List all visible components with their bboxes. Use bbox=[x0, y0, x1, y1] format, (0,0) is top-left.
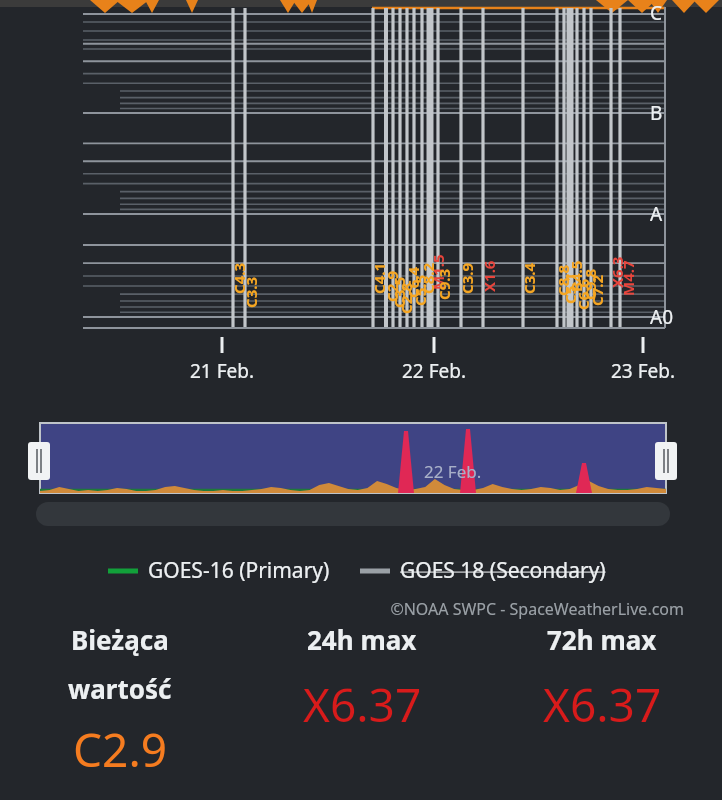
staticText: C4.3 bbox=[229, 262, 249, 294]
staticText: C6.4 bbox=[403, 266, 423, 298]
staticText: B4.5 bbox=[566, 260, 586, 292]
staticText: Bieżąca bbox=[71, 622, 169, 657]
staticText: C6.6 bbox=[573, 278, 593, 310]
staticText: C2.9 bbox=[382, 270, 402, 302]
staticText: B bbox=[650, 100, 663, 126]
staticText: A bbox=[650, 201, 663, 227]
staticText: wartość bbox=[68, 671, 172, 706]
staticText: C3.9 bbox=[457, 262, 477, 294]
staticText: C3.4 bbox=[519, 262, 539, 294]
button[interactable]: GOES X-ray flux chart bbox=[0, 0, 722, 400]
staticText: X1.6 bbox=[479, 260, 499, 292]
staticText: X6.3 bbox=[607, 256, 627, 288]
button[interactable]: Chart range selector bbox=[28, 420, 698, 500]
staticText: 22 Feb. bbox=[424, 460, 482, 483]
staticText: 72h max bbox=[547, 622, 657, 657]
staticText: C7.2 bbox=[587, 274, 607, 306]
button[interactable]: GOES 18 (Secondary) bbox=[360, 556, 606, 585]
staticText: C2.8 bbox=[396, 282, 416, 314]
staticText: M1.5 bbox=[428, 254, 448, 290]
staticText: C2.9 bbox=[73, 718, 168, 781]
staticText: C bbox=[650, 0, 663, 26]
staticText: C8.8 bbox=[553, 264, 573, 296]
staticText: 24h max bbox=[307, 622, 417, 657]
staticText: C5.1 bbox=[560, 272, 580, 304]
staticText: 21 Feb. bbox=[170, 358, 274, 384]
button[interactable]: GOES-16 (Primary) bbox=[108, 556, 330, 585]
staticText: GOES 18 (Secondary) bbox=[400, 556, 606, 585]
staticText: C8.2 bbox=[418, 262, 438, 294]
staticText: C4.1 bbox=[369, 262, 389, 294]
staticText: ©NOAA SWPC - SpaceWeatherLive.com bbox=[0, 598, 684, 620]
staticText: C3.5 bbox=[389, 276, 409, 308]
staticText: X6.37 bbox=[543, 673, 662, 736]
staticText: C9.8 bbox=[580, 268, 600, 300]
staticText: C5.5 bbox=[410, 274, 430, 306]
button[interactable]: Bieżąca bbox=[20, 622, 220, 781]
staticText: 23 Feb. bbox=[591, 358, 695, 384]
staticText: M4.7 bbox=[618, 260, 638, 296]
button[interactable]: 72h max bbox=[492, 622, 712, 736]
staticText: C3.3 bbox=[241, 276, 261, 308]
staticText: A0 bbox=[650, 304, 674, 330]
staticText: GOES-16 (Primary) bbox=[148, 556, 330, 585]
button[interactable]: 24h max bbox=[252, 622, 472, 736]
staticText: X6.37 bbox=[303, 673, 422, 736]
staticText: C9.3 bbox=[434, 268, 454, 300]
staticText: 22 Feb. bbox=[382, 358, 486, 384]
